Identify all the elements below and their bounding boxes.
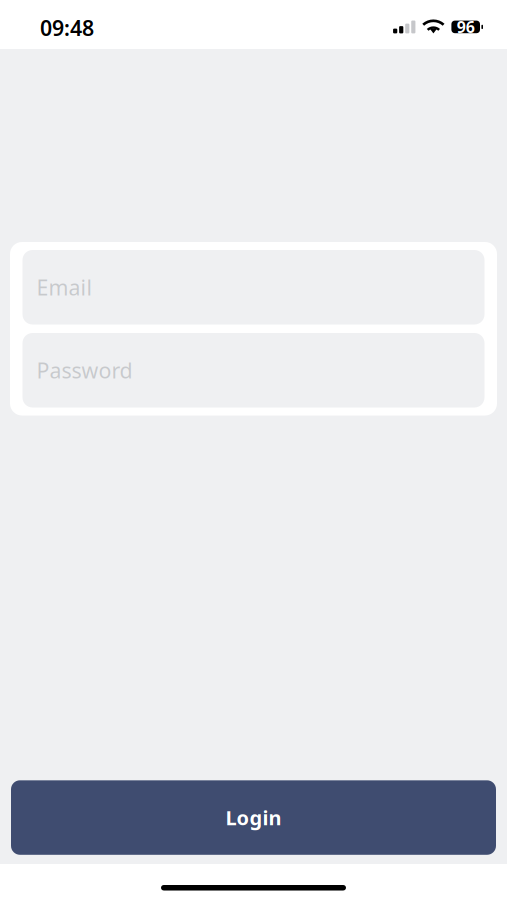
button[interactable]: Email — [22, 250, 484, 324]
staticText: 96 — [457, 16, 475, 37]
staticText: Login — [225, 804, 281, 831]
staticText: Password — [36, 356, 132, 384]
button[interactable]: Login — [11, 780, 496, 855]
button[interactable]: Password — [22, 333, 484, 407]
staticText: Email — [36, 273, 92, 301]
staticText: 09:48 — [40, 14, 94, 42]
